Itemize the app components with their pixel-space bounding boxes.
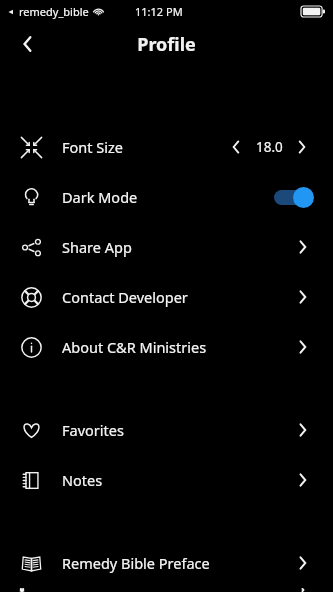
button[interactable]: Dark Mode toggle — [273, 186, 315, 208]
staticText: Favorites — [62, 420, 293, 440]
button[interactable]: Back — [10, 27, 44, 61]
button[interactable]: Remedy Bible Preface — [0, 538, 333, 588]
staticText: Font Size — [62, 137, 223, 157]
button[interactable]: Contact Developer — [0, 272, 333, 322]
staticText: Profile — [137, 32, 196, 57]
button[interactable]: Increase font size — [289, 134, 315, 160]
staticText: Notes — [62, 470, 293, 490]
staticText: 11:12 PM — [135, 4, 183, 19]
button[interactable]: Decrease font size — [223, 134, 249, 160]
staticText: Dark Mode — [62, 187, 273, 207]
button[interactable]: Share App — [0, 222, 333, 272]
staticText: Contact Developer — [62, 287, 293, 307]
button[interactable]: Favorites — [0, 405, 333, 455]
staticText: About C&R Ministries — [62, 337, 293, 357]
button[interactable]: Notes — [0, 455, 333, 505]
staticText: remedy_bible — [19, 4, 89, 19]
button[interactable]: About C&R Ministries — [0, 322, 333, 372]
button[interactable]: Font Size — [0, 122, 333, 172]
staticText: 18.0 — [256, 138, 283, 156]
staticText: Share App — [62, 237, 293, 257]
staticText: Remedy Bible Preface — [62, 553, 293, 573]
button[interactable]: Dark Mode — [0, 172, 333, 222]
button[interactable]: Preface to Psalms — [0, 588, 333, 592]
